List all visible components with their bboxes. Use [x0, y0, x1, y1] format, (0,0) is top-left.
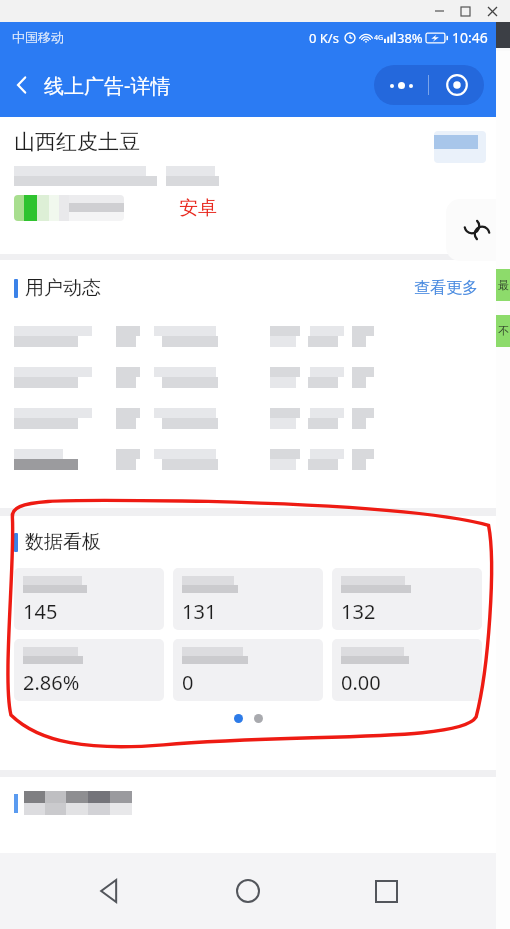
button[interactable]: 0	[173, 639, 323, 701]
staticText: 不	[498, 324, 509, 338]
staticText: 2.86%	[23, 669, 80, 696]
staticText: 最	[498, 278, 509, 292]
staticText: 132	[341, 598, 376, 625]
staticText: 0 K/s	[309, 29, 339, 47]
staticText: 0.00	[341, 669, 381, 696]
button[interactable]: Copy link	[446, 199, 508, 261]
button[interactable]: Back	[82, 863, 138, 919]
button[interactable]: 145	[14, 568, 164, 630]
button[interactable]: Minimize	[426, 0, 452, 22]
button[interactable]: More options	[374, 65, 428, 105]
button[interactable]: 2.86%	[14, 639, 164, 701]
staticText: 145	[23, 598, 58, 625]
staticText: 131	[182, 598, 217, 625]
staticText: 线上广告-详情	[44, 72, 171, 99]
staticText: 安卓	[179, 196, 217, 220]
staticText: 10:46	[452, 28, 488, 47]
staticText: 38%	[397, 29, 423, 47]
button[interactable]: Close	[478, 0, 506, 22]
button[interactable]: Home	[220, 863, 276, 919]
staticText: 用户动态	[25, 276, 101, 300]
staticText: 中国移动	[12, 29, 64, 45]
button[interactable]: Back	[0, 63, 44, 107]
button[interactable]: 查看更多	[410, 274, 482, 302]
staticText: 4G	[374, 33, 384, 43]
button[interactable]: 131	[173, 568, 323, 630]
staticText: 山西红皮土豆	[14, 129, 140, 155]
button[interactable]: Maximize	[452, 0, 478, 22]
staticText: 查看更多	[414, 278, 478, 298]
staticText: 数据看板	[25, 530, 101, 554]
staticText: 0	[182, 669, 194, 696]
button[interactable]: Recent apps	[358, 863, 414, 919]
button[interactable]: Close	[429, 65, 484, 105]
button[interactable]: 0.00	[332, 639, 482, 701]
button[interactable]: 132	[332, 568, 482, 630]
